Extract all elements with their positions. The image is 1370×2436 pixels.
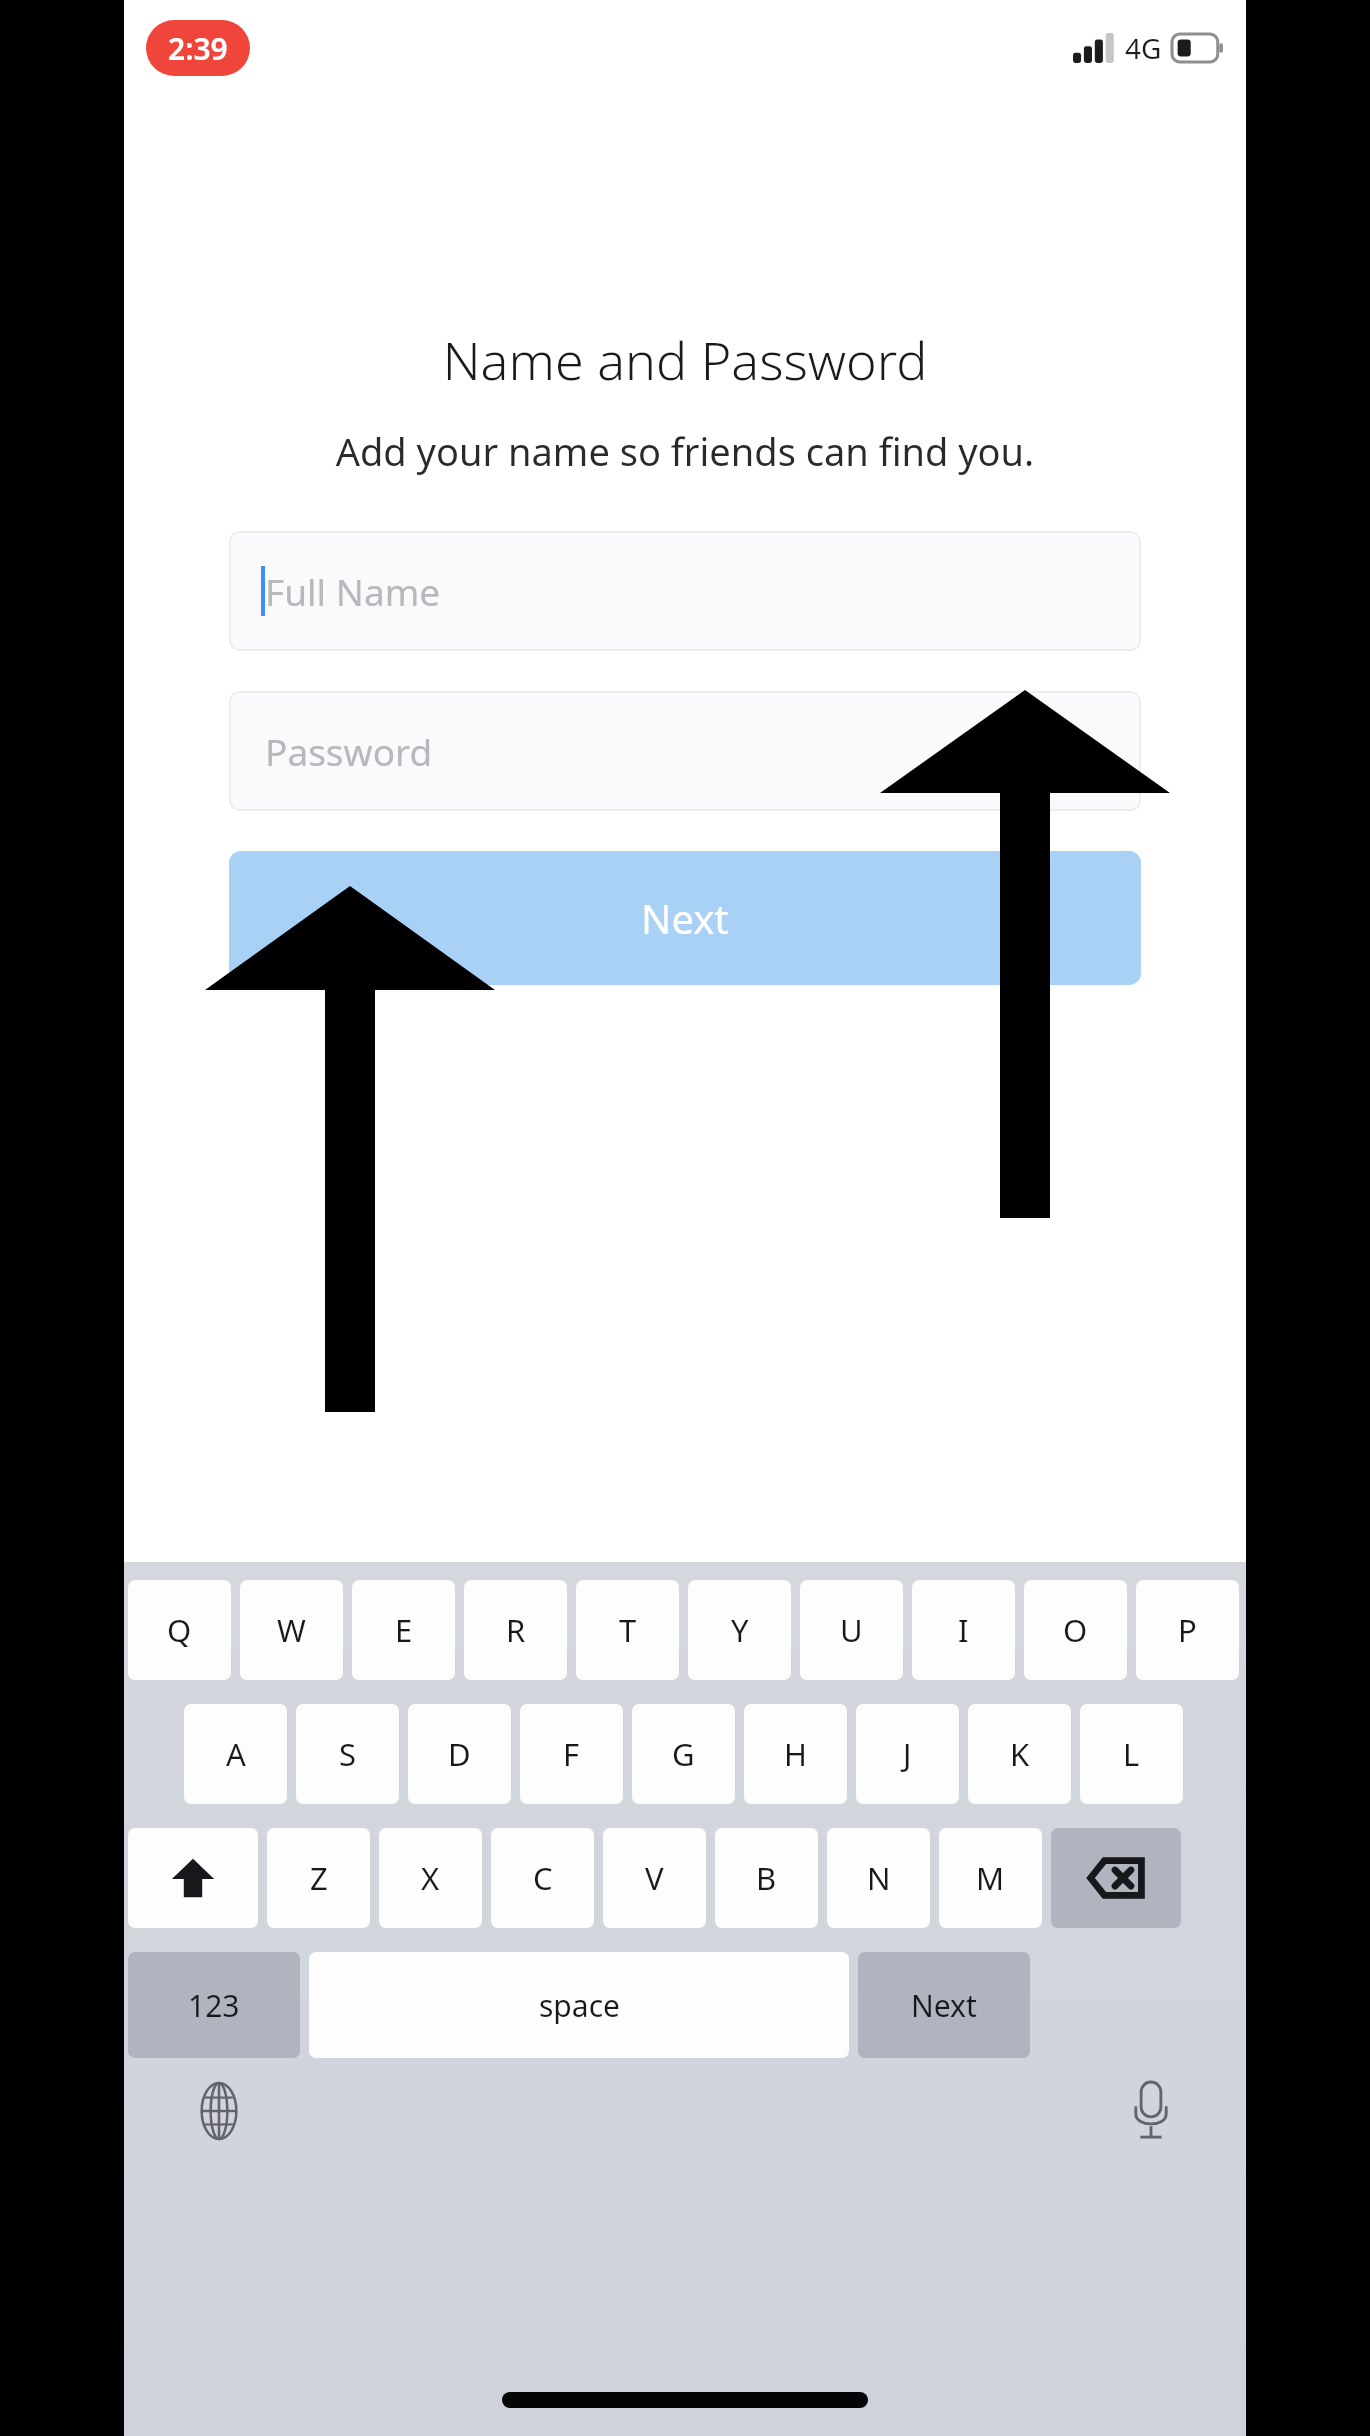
staticText: Full Name <box>265 566 441 616</box>
staticText: Y <box>731 1609 749 1651</box>
staticText: Q <box>167 1609 192 1651</box>
button[interactable]: X <box>379 1828 482 1928</box>
staticText: R <box>506 1609 526 1651</box>
button[interactable]: T <box>576 1580 679 1680</box>
staticText: B <box>756 1857 777 1899</box>
staticText: 2:39 <box>168 28 228 69</box>
button[interactable]: Z <box>267 1828 370 1928</box>
button[interactable]: D <box>408 1704 511 1804</box>
staticText: C <box>533 1857 553 1899</box>
staticText: E <box>395 1609 413 1651</box>
button[interactable]: A <box>184 1704 287 1804</box>
button[interactable]: U <box>800 1580 903 1680</box>
button[interactable]: Full Name <box>229 531 1141 651</box>
staticText: W <box>277 1609 306 1651</box>
button[interactable]: Next <box>229 851 1141 985</box>
staticText: X <box>421 1857 440 1899</box>
button[interactable]: Password <box>229 691 1141 811</box>
button[interactable]: Backspace <box>1051 1828 1181 1928</box>
button[interactable]: Dictate <box>1120 2080 1182 2142</box>
staticText: Add your name so friends can find you. <box>124 425 1246 477</box>
staticText: Name and Password <box>124 324 1246 395</box>
staticText: Next <box>911 1985 977 2026</box>
staticText: S <box>339 1733 357 1775</box>
button[interactable]: H <box>744 1704 847 1804</box>
staticText: H <box>784 1733 807 1775</box>
staticText: Z <box>310 1857 328 1899</box>
staticText: space <box>539 1985 620 2026</box>
staticText: J <box>903 1733 912 1775</box>
staticText: D <box>448 1733 471 1775</box>
staticText: T <box>619 1609 637 1651</box>
button[interactable]: W <box>240 1580 343 1680</box>
staticText: Password <box>265 726 433 776</box>
staticText: 4G <box>1125 29 1162 67</box>
staticText: A <box>226 1733 246 1775</box>
button[interactable]: S <box>296 1704 399 1804</box>
staticText: M <box>976 1857 1005 1899</box>
staticText: I <box>958 1609 969 1651</box>
button[interactable]: E <box>352 1580 455 1680</box>
staticText: N <box>867 1857 891 1899</box>
button[interactable]: J <box>856 1704 959 1804</box>
button[interactable]: Change keyboard language <box>188 2080 250 2142</box>
button[interactable]: K <box>968 1704 1071 1804</box>
button[interactable]: Q <box>128 1580 231 1680</box>
button[interactable]: V <box>603 1828 706 1928</box>
button[interactable]: I <box>912 1580 1015 1680</box>
button[interactable]: F <box>520 1704 623 1804</box>
button[interactable]: O <box>1024 1580 1127 1680</box>
staticText: 123 <box>188 1985 240 2026</box>
staticText: P <box>1178 1609 1197 1651</box>
button[interactable]: Y <box>688 1580 791 1680</box>
staticText: U <box>840 1609 863 1651</box>
button[interactable]: C <box>491 1828 594 1928</box>
staticText: L <box>1123 1733 1140 1775</box>
button[interactable]: N <box>827 1828 930 1928</box>
button[interactable]: R <box>464 1580 567 1680</box>
button[interactable]: M <box>939 1828 1042 1928</box>
staticText: F <box>563 1733 580 1775</box>
button[interactable]: Shift <box>128 1828 258 1928</box>
staticText: K <box>1010 1733 1030 1775</box>
staticText: V <box>645 1857 664 1899</box>
button[interactable]: P <box>1136 1580 1239 1680</box>
staticText: G <box>672 1733 695 1775</box>
button[interactable]: L <box>1080 1704 1183 1804</box>
button[interactable]: B <box>715 1828 818 1928</box>
staticText: O <box>1063 1609 1088 1651</box>
staticText: Next <box>641 891 729 945</box>
button[interactable]: Next <box>858 1952 1030 2058</box>
button[interactable]: space <box>309 1952 849 2058</box>
button[interactable]: 123 <box>128 1952 300 2058</box>
button[interactable]: G <box>632 1704 735 1804</box>
